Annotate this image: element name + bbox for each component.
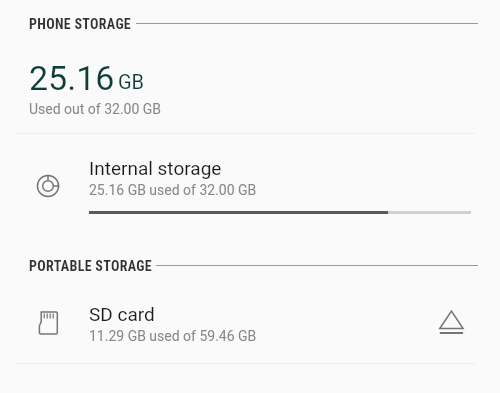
staticText: Internal storage — [89, 157, 222, 179]
staticText: PORTABLE STORAGE — [29, 258, 152, 274]
button[interactable]: SD card — [0, 298, 500, 362]
staticText: GB — [118, 70, 145, 93]
staticText: Used out of 32.00 GB — [29, 101, 162, 117]
staticText: PHONE STORAGE — [29, 16, 132, 32]
staticText: 11.29 GB used of 59.46 GB — [89, 328, 257, 344]
button[interactable]: Eject SD card — [432, 301, 472, 341]
button[interactable]: Internal storage — [0, 152, 500, 214]
staticText: 25.16 — [29, 58, 115, 98]
staticText: SD card — [89, 303, 155, 325]
staticText: 25.16 GB used of 32.00 GB — [89, 182, 257, 198]
